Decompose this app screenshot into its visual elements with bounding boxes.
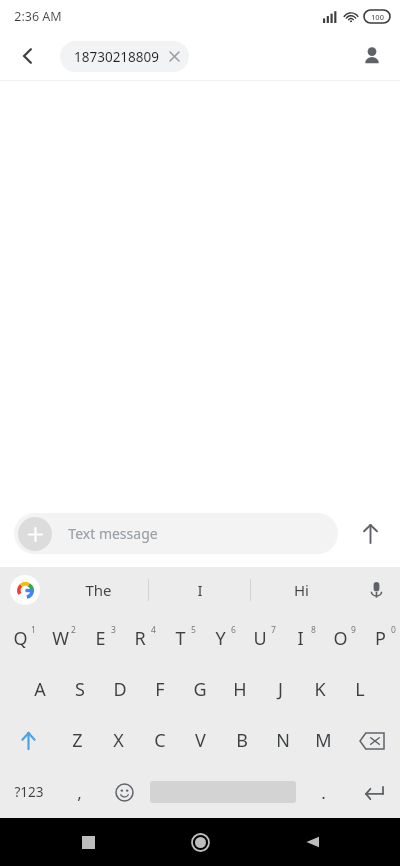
staticText: 7 [271,624,276,636]
button[interactable]: Q [0,613,40,664]
button[interactable]: F [140,664,180,715]
staticText: 2 [71,624,76,636]
staticText: Q [13,626,28,651]
staticText: H [233,677,247,702]
staticText: I [297,626,304,651]
button[interactable]: H [220,664,260,715]
staticText: M [315,728,332,753]
button[interactable]: Send [348,511,392,555]
staticText: 18730218809 [74,48,159,66]
button[interactable]: Google [10,575,40,605]
button[interactable]: , [58,766,100,818]
staticText: . [321,781,326,804]
staticText: I [197,580,203,600]
button[interactable]: V [180,715,221,766]
staticText: U [253,626,267,651]
button[interactable]: Backspace [344,715,400,766]
staticText: W [52,626,69,651]
staticText: K [314,677,326,702]
button[interactable]: W [40,613,80,664]
button[interactable]: O [320,613,360,664]
staticText: 100 [371,12,384,22]
button[interactable]: Shift [0,715,56,766]
button[interactable]: M [303,715,344,766]
button[interactable]: . [298,766,348,818]
button[interactable]: X [98,715,139,766]
button[interactable]: Hi [251,567,352,613]
staticText: X [113,728,124,753]
button[interactable]: L [340,664,380,715]
button[interactable]: I [149,567,250,613]
button[interactable]: The [48,567,148,613]
button[interactable]: ?123 [0,766,58,818]
button[interactable]: Recents [64,818,112,866]
staticText: The [85,580,112,600]
button[interactable]: J [260,664,300,715]
button[interactable]: Enter [348,766,400,818]
staticText: Hi [294,580,309,600]
staticText: 5 [191,624,196,636]
staticText: 3 [111,624,116,636]
button[interactable]: Emoji [100,766,148,818]
button[interactable]: Y [200,613,240,664]
button[interactable]: N [262,715,303,766]
button[interactable]: Z [56,715,98,766]
button[interactable]: Back [8,36,48,76]
staticText: S [75,677,85,702]
staticText: Text message [68,524,158,543]
staticText: Z [72,728,83,753]
button[interactable]: S [60,664,100,715]
staticText: V [195,728,206,753]
button[interactable]: Voice input [352,567,400,613]
staticText: E [95,626,106,651]
staticText: T [175,626,186,651]
button[interactable]: 18730218809 [60,41,189,72]
button[interactable]: Add attachment [18,517,52,551]
button[interactable]: Contact details [352,36,392,76]
button[interactable]: K [300,664,340,715]
button[interactable]: Add attachment [14,513,338,554]
staticText: Y [215,626,226,651]
button[interactable]: U [240,613,280,664]
button[interactable]: B [221,715,262,766]
staticText: C [154,728,166,753]
staticText: 0 [391,624,396,636]
staticText: O [333,626,348,651]
button[interactable]: Back [288,818,336,866]
button[interactable]: T [160,613,200,664]
staticText: ?123 [14,783,44,801]
staticText: N [276,728,290,753]
button[interactable]: A [20,664,60,715]
staticText: 4 [151,624,156,636]
staticText: F [155,677,165,702]
button[interactable]: C [139,715,180,766]
button[interactable]: Home [176,818,224,866]
staticText: R [134,626,146,651]
staticText: 6 [231,624,236,636]
staticText: 9 [351,624,356,636]
staticText: 8 [311,624,316,636]
button[interactable]: G [180,664,220,715]
staticText: P [375,626,386,651]
button[interactable]: E [80,613,120,664]
button[interactable]: R [120,613,160,664]
button[interactable]: D [100,664,140,715]
staticText: B [236,728,248,753]
staticText: D [113,677,127,702]
button[interactable]: I [280,613,320,664]
staticText: L [355,677,365,702]
button[interactable]: P [360,613,400,664]
staticText: J [278,677,283,702]
staticText: A [34,677,46,702]
staticText: 2:36 AM [14,8,62,25]
staticText: 1 [31,624,36,636]
staticText: G [193,677,207,702]
staticText: , [77,781,82,804]
